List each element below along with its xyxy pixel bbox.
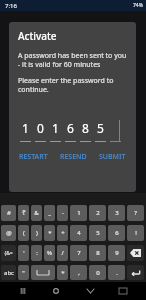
staticText: _ (48, 209, 51, 217)
button[interactable]: ( (18, 225, 29, 241)
staticText: 74% (133, 2, 143, 9)
button[interactable]: Switch keyboard (113, 282, 133, 300)
staticText: 1 (77, 209, 81, 217)
button[interactable]: : (31, 245, 42, 261)
staticText: 7 (77, 249, 81, 257)
staticText: SUBMIT (99, 152, 126, 162)
staticText: @ (6, 229, 12, 237)
button[interactable]: 1 (70, 205, 87, 221)
button[interactable]: + (57, 225, 68, 241)
staticText: Please enter the password to continue. (18, 76, 127, 94)
staticText: 8 (96, 249, 100, 257)
staticText: " (22, 269, 25, 277)
button[interactable]: enter (127, 265, 144, 280)
button[interactable]: RESEND (59, 150, 88, 164)
button[interactable]: / (57, 245, 68, 261)
button[interactable]: * (57, 265, 68, 280)
button[interactable]: ! (127, 225, 144, 241)
staticText: 8 (82, 120, 89, 136)
button[interactable]: , (70, 265, 87, 280)
button[interactable]: Home (46, 282, 66, 300)
staticText: 2 (96, 209, 100, 217)
staticText: ? (134, 209, 137, 217)
staticText: # (7, 209, 11, 217)
staticText: % (47, 249, 52, 257)
staticText: 0 (96, 269, 100, 277)
staticText: : (36, 249, 38, 257)
staticText: + (61, 229, 65, 237)
staticText: ₹ (22, 209, 26, 217)
button[interactable]: & (31, 205, 42, 221)
staticText: 1 (22, 120, 29, 136)
button[interactable]: 0 (89, 265, 106, 280)
staticText: RESEND (60, 152, 87, 162)
staticText: A password has been sent to you - it is … (18, 51, 127, 69)
staticText: * (61, 269, 65, 277)
staticText: Activate (18, 29, 57, 43)
button[interactable]: ) (31, 225, 42, 241)
staticText: & (34, 209, 39, 217)
staticText: . (116, 269, 118, 277)
staticText: ) (36, 229, 38, 237)
button[interactable]: {&= (1, 245, 16, 261)
staticText: 6 (67, 120, 74, 136)
button[interactable]: . (108, 265, 125, 280)
button[interactable]: " (18, 265, 29, 280)
staticText: 7:16 (5, 2, 17, 10)
staticText: ' (23, 249, 25, 257)
staticText: 3 (115, 209, 119, 217)
staticText: * (48, 229, 52, 237)
button[interactable]: ' (18, 245, 29, 261)
staticText: RESTART (19, 152, 48, 162)
button[interactable]: backspace (127, 245, 144, 261)
button[interactable]: - (57, 205, 68, 221)
button[interactable]: abc (1, 265, 16, 280)
staticText: 4 (77, 229, 81, 237)
button[interactable]: 9 (108, 245, 125, 261)
button[interactable]: Recents (13, 282, 33, 300)
button[interactable]: 7 (70, 245, 87, 261)
button[interactable]: 5 (89, 225, 106, 241)
button[interactable]: ₹ (18, 205, 29, 221)
staticText: 5 (96, 229, 100, 237)
button[interactable]: 8 (89, 245, 106, 261)
staticText: / (61, 249, 64, 257)
staticText: 1 (52, 120, 59, 136)
staticText: 5 (97, 120, 104, 136)
button[interactable]: # (1, 205, 16, 221)
staticText: - (62, 209, 64, 217)
staticText: 0 (37, 120, 44, 136)
staticText: ( (23, 229, 25, 237)
button[interactable]: % (44, 245, 55, 261)
button[interactable]: * (44, 225, 55, 241)
staticText: {&= (4, 250, 13, 257)
button[interactable]: ? (127, 205, 144, 221)
staticText: , (78, 269, 80, 277)
button[interactable]: @ (1, 225, 16, 241)
staticText: abc (4, 269, 14, 277)
button[interactable]: space (31, 265, 55, 280)
staticText: 6 (115, 229, 119, 237)
button[interactable]: _ (44, 205, 55, 221)
button[interactable]: SUBMIT (98, 150, 127, 164)
button[interactable]: 3 (108, 205, 125, 221)
button[interactable]: RESTART (18, 150, 49, 164)
staticText: 9 (115, 249, 119, 257)
button[interactable]: 4 (70, 225, 87, 241)
button[interactable]: 6 (108, 225, 125, 241)
staticText: ! (135, 229, 137, 237)
button[interactable]: Hide keyboard (80, 282, 100, 300)
button[interactable]: 2 (89, 205, 106, 221)
